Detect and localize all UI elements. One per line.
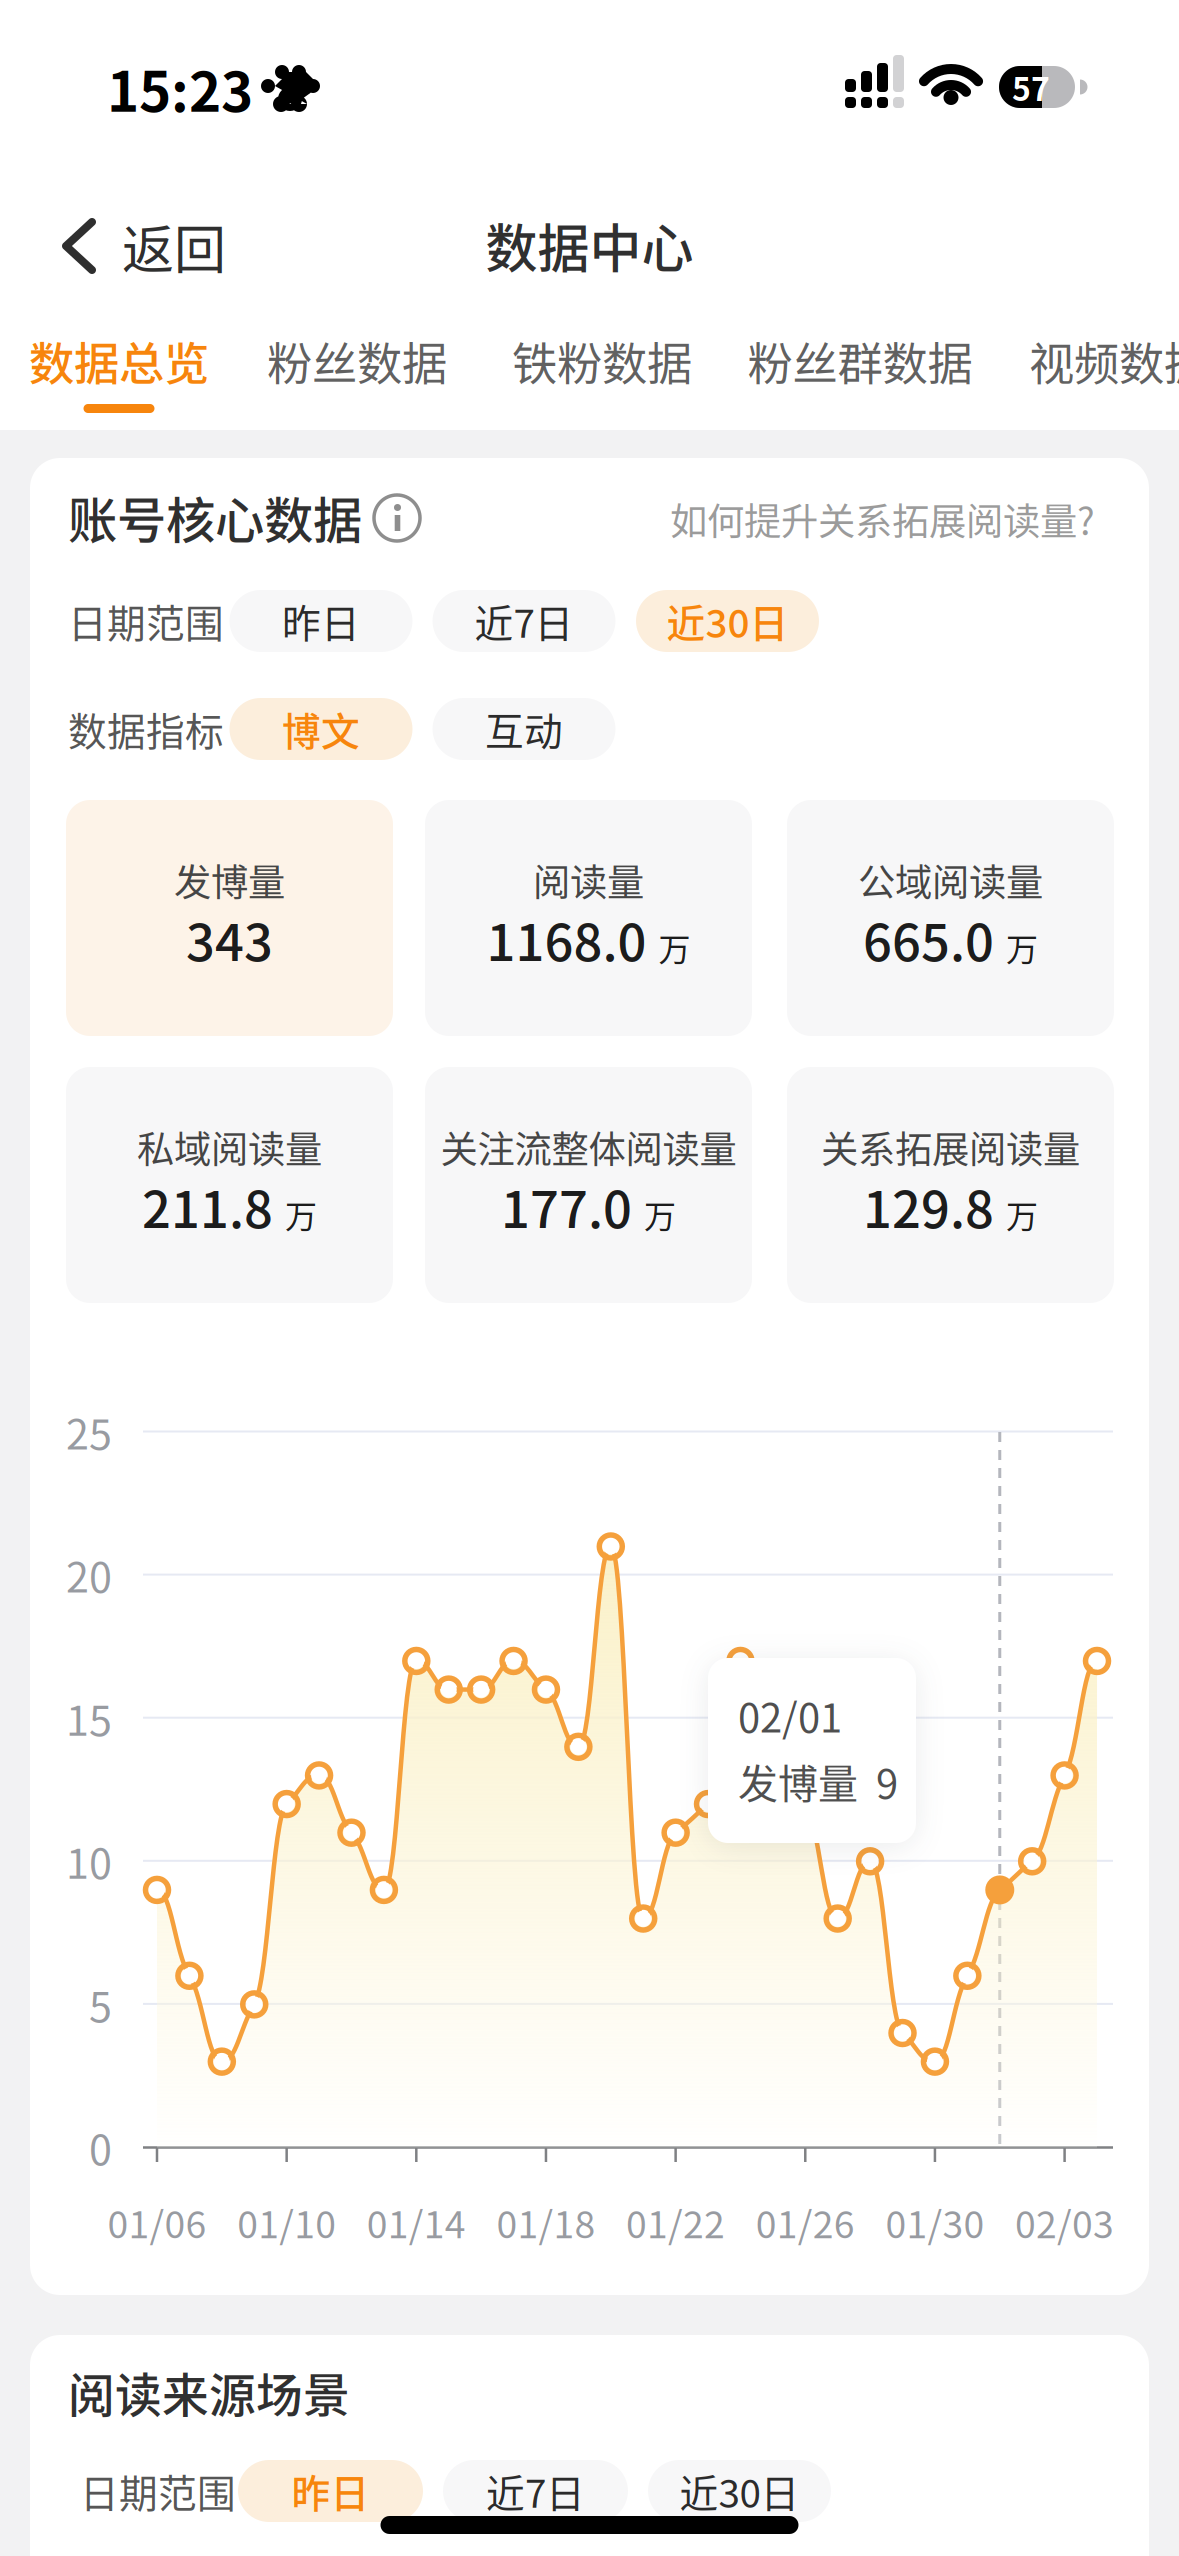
staticText: 20: [66, 1545, 112, 1605]
button[interactable]: 博文: [229, 698, 412, 760]
staticText: 视频数据: [1029, 328, 1179, 394]
staticText: 5: [89, 1974, 112, 2034]
staticText: 阅读量: [533, 853, 644, 907]
button[interactable]: 粉丝群数据: [747, 328, 972, 394]
staticText: 近7日: [474, 593, 573, 649]
staticText: 发博量 9: [738, 1752, 898, 1810]
button[interactable]: 昨日: [238, 2460, 423, 2522]
staticText: 211.8: [142, 1169, 273, 1243]
button[interactable]: 近30日: [648, 2460, 831, 2522]
staticText: 博文: [282, 701, 360, 757]
staticText: 如何提升关系拓展阅读量?: [670, 492, 1095, 546]
staticText: 15:23: [107, 48, 253, 128]
staticText: 返回: [122, 208, 226, 284]
staticText: 0: [89, 2117, 112, 2177]
staticText: 343: [186, 902, 273, 976]
staticText: 25: [66, 1402, 112, 1461]
staticText: 10: [66, 1831, 112, 1891]
staticText: 177.0: [501, 1169, 632, 1243]
staticText: 数据中心: [485, 207, 693, 283]
staticText: 57: [1012, 64, 1050, 110]
staticText: 私域阅读量: [137, 1120, 322, 1174]
staticText: 665.0: [863, 902, 994, 976]
staticText: 数据总览: [29, 328, 209, 394]
staticText: 02/03: [1015, 2195, 1114, 2249]
button[interactable]: 关注流整体阅读量: [425, 1067, 752, 1303]
button[interactable]: 粉丝数据: [267, 328, 447, 394]
staticText: 01/06: [107, 2195, 206, 2249]
button[interactable]: 关系拓展阅读量: [787, 1067, 1114, 1303]
staticText: 数据指标: [68, 701, 224, 757]
staticText: 账号核心数据: [68, 481, 362, 553]
button[interactable]: 说明: [374, 495, 420, 541]
button[interactable]: 近7日: [432, 590, 615, 652]
staticText: 01/30: [885, 2195, 984, 2249]
staticText: 近30日: [666, 593, 788, 649]
button[interactable]: 私域阅读量: [66, 1067, 393, 1303]
button[interactable]: 数据总览: [29, 328, 209, 394]
staticText: 万: [285, 1191, 317, 1237]
button[interactable]: 发博量: [66, 800, 393, 1036]
button[interactable]: 铁粉数据: [512, 328, 692, 394]
staticText: 昨日: [291, 2463, 369, 2519]
staticText: 关注流整体阅读量: [440, 1120, 736, 1174]
staticText: 万: [1006, 924, 1038, 970]
button[interactable]: 近30日: [636, 590, 819, 652]
button[interactable]: 如何提升关系拓展阅读量?: [495, 492, 1095, 546]
button[interactable]: 近7日: [443, 2460, 628, 2522]
staticText: 近7日: [486, 2463, 585, 2519]
staticText: 关系拓展阅读量: [821, 1120, 1080, 1174]
staticText: 近30日: [679, 2463, 799, 2519]
button[interactable]: 返回: [44, 201, 244, 291]
staticText: 互动: [485, 701, 563, 757]
button[interactable]: 阅读量: [425, 800, 752, 1036]
staticText: 阅读来源场景: [68, 2358, 350, 2426]
staticText: 02/01: [738, 1686, 842, 1744]
staticText: 粉丝群数据: [747, 328, 972, 394]
staticText: 01/14: [367, 2195, 466, 2249]
button[interactable]: 视频数据: [1029, 328, 1179, 394]
button[interactable]: 昨日: [229, 590, 412, 652]
staticText: 01/10: [237, 2195, 336, 2249]
staticText: 01/18: [496, 2195, 595, 2249]
staticText: 129.8: [863, 1169, 994, 1243]
button[interactable]: 互动: [432, 698, 615, 760]
staticText: 万: [1006, 1191, 1038, 1237]
staticText: 万: [644, 1191, 676, 1237]
staticText: 01/26: [756, 2195, 855, 2249]
staticText: 万: [658, 924, 690, 970]
staticText: 1168.0: [486, 902, 646, 976]
staticText: 15: [66, 1688, 112, 1748]
staticText: 01/22: [626, 2195, 725, 2249]
staticText: 铁粉数据: [512, 328, 692, 394]
staticText: 日期范围: [68, 593, 224, 649]
staticText: 昨日: [282, 593, 360, 649]
staticText: 粉丝数据: [267, 328, 447, 394]
staticText: 日期范围: [80, 2463, 236, 2519]
button[interactable]: 公域阅读量: [787, 800, 1114, 1036]
staticText: 发博量: [174, 853, 285, 907]
staticText: 公域阅读量: [858, 853, 1043, 907]
